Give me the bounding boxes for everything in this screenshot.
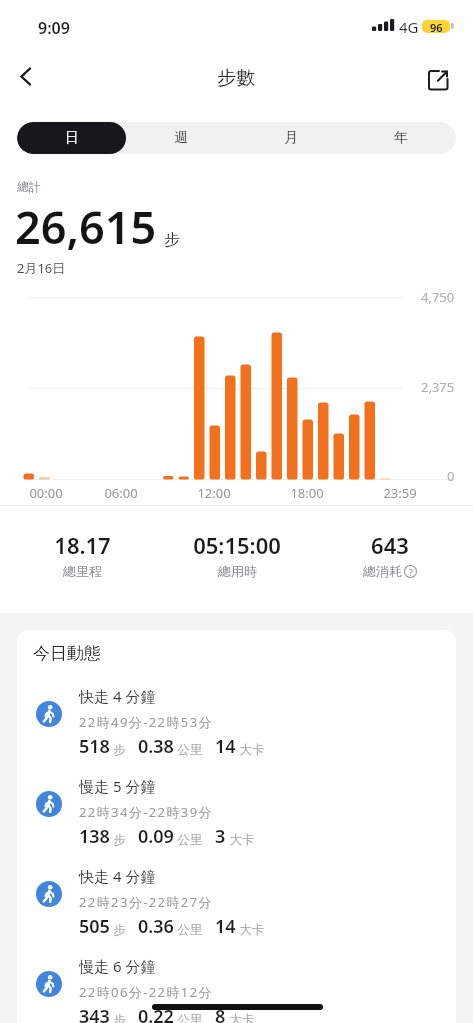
button[interactable]: 快走 4 分鐘 (17, 686, 456, 772)
staticText: 18:00 (290, 484, 324, 502)
staticText: 步 (110, 1011, 126, 1023)
staticText: 4G (399, 17, 419, 37)
staticText: 總里程 (63, 563, 102, 579)
staticText: 18.17 (54, 530, 111, 560)
staticText: 0.09 (138, 824, 174, 849)
staticText: 343 (79, 1004, 110, 1023)
staticText: 06:00 (104, 484, 138, 502)
staticText: 22時06分-22時12分 (79, 983, 213, 1001)
staticText: 0 (447, 467, 455, 485)
staticText: 22時23分-22時27分 (79, 893, 213, 911)
staticText: 大卡 (236, 921, 265, 938)
staticText: 總計 (17, 179, 41, 194)
staticText: 步數 (217, 66, 255, 90)
staticText: 週 (174, 129, 188, 147)
staticText: ? (409, 566, 413, 578)
staticText: 公里 (174, 831, 203, 848)
staticText: 公里 (174, 741, 203, 758)
staticText: 00:00 (29, 484, 63, 502)
staticText: 今日動態 (33, 643, 101, 664)
staticText: 3 (215, 824, 226, 849)
button[interactable]: 月 (236, 122, 346, 154)
staticText: 2月16日 (17, 259, 66, 277)
staticText: 步 (110, 921, 126, 938)
staticText: 8 (215, 1004, 226, 1023)
staticText: 公里 (174, 1011, 203, 1023)
staticText: 年 (394, 129, 408, 147)
staticText: 12:00 (197, 484, 231, 502)
staticText: 總用時 (218, 563, 257, 579)
staticText: 日 (65, 129, 79, 147)
staticText: 慢走 6 分鐘 (79, 956, 156, 976)
staticText: 22時34分-22時39分 (79, 803, 213, 821)
staticText: 26,615 (15, 196, 157, 257)
button[interactable]: 週 (126, 122, 236, 154)
button[interactable] (10, 62, 46, 94)
button[interactable]: 慢走 6 分鐘 (17, 956, 456, 1023)
staticText: 總消耗 (363, 563, 402, 579)
staticText: 0.38 (138, 734, 174, 759)
staticText: 大卡 (226, 1011, 255, 1023)
staticText: 0.22 (138, 1004, 174, 1023)
staticText: 0.36 (138, 914, 174, 939)
staticText: 9:09 (38, 17, 70, 39)
button[interactable]: 日 (17, 122, 126, 154)
staticText: 步 (164, 230, 180, 250)
staticText: 05:15:00 (193, 530, 281, 560)
staticText: 月 (284, 129, 298, 147)
staticText: 22時49分-22時53分 (79, 713, 213, 731)
staticText: 快走 4 分鐘 (79, 866, 156, 886)
staticText: 14 (215, 914, 236, 939)
button[interactable]: 快走 4 分鐘 (17, 866, 456, 952)
staticText: 96 (430, 20, 443, 33)
staticText: 大卡 (226, 831, 255, 848)
staticText: 大卡 (236, 741, 265, 758)
staticText: 505 (79, 914, 110, 939)
staticText: 518 (79, 734, 110, 759)
staticText: 23:59 (383, 484, 417, 502)
staticText: 慢走 5 分鐘 (79, 776, 156, 796)
staticText: 643 (371, 530, 409, 560)
staticText: 2,375 (421, 378, 455, 396)
staticText: 步 (110, 831, 126, 848)
staticText: 14 (215, 734, 236, 759)
button[interactable] (424, 64, 454, 94)
staticText: 4,750 (421, 288, 455, 306)
staticText: 快走 4 分鐘 (79, 686, 156, 706)
staticText: 公里 (174, 921, 203, 938)
staticText: 步 (110, 741, 126, 758)
button[interactable]: 慢走 5 分鐘 (17, 776, 456, 862)
button[interactable]: 年 (346, 122, 456, 154)
staticText: 138 (79, 824, 110, 849)
